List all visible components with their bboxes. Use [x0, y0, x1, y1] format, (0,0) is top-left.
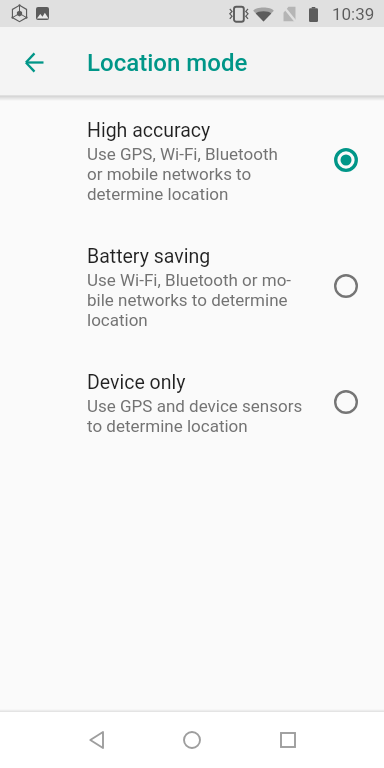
button[interactable]: Device only: [0, 330, 384, 436]
staticText: Location mode: [87, 49, 248, 77]
button[interactable]: Navigate up: [10, 38, 58, 86]
button[interactable]: Back: [64, 712, 128, 768]
staticText: to determine location: [87, 416, 248, 436]
staticText: Use GPS, Wi-Fi, Bluetooth: [87, 144, 278, 164]
staticText: Battery saving: [87, 245, 211, 268]
button[interactable]: Home: [160, 712, 224, 768]
staticText: bile networks to determine: [87, 290, 288, 310]
staticText: determine location: [87, 184, 229, 204]
staticText: Use GPS and device sensors: [87, 396, 303, 416]
staticText: High accuracy: [87, 119, 211, 142]
button[interactable]: Recent apps: [256, 712, 320, 768]
staticText: 10:39: [332, 4, 375, 24]
staticText: location: [87, 310, 148, 330]
staticText: Use Wi-Fi, Bluetooth or mo-: [87, 270, 292, 290]
staticText: Device only: [87, 371, 186, 394]
staticText: or mobile networks to: [87, 164, 252, 184]
button[interactable]: Battery saving: [0, 204, 384, 330]
button[interactable]: High accuracy: [0, 95, 384, 204]
